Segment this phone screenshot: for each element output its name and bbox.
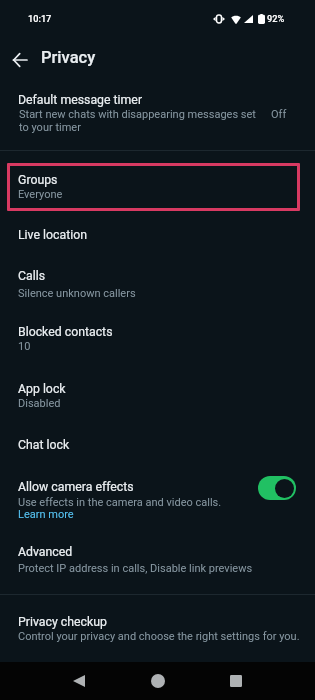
button[interactable]: Privacy checkup	[0, 605, 315, 653]
staticText: 10	[18, 340, 31, 353]
staticText: 10:17	[28, 13, 52, 24]
staticText: Allow camera effects	[18, 480, 134, 494]
staticText: Start new chats with disappearing messag…	[19, 108, 257, 133]
staticText: Groups	[18, 173, 58, 187]
button[interactable]: Allow camera effects	[258, 476, 296, 500]
staticText: Control your privacy and choose the righ…	[18, 630, 300, 643]
button[interactable]: Recent apps	[220, 665, 252, 697]
staticText: Protect IP address in calls, Disable lin…	[18, 562, 253, 575]
staticText: Off	[271, 108, 287, 121]
staticText: Silence unknown callers	[18, 287, 136, 300]
staticText: Default message timer	[18, 93, 143, 107]
staticText: Privacy	[41, 48, 96, 67]
staticText: Privacy checkup	[18, 615, 107, 629]
staticText: Calls	[18, 269, 46, 283]
button[interactable]: Chat lock	[0, 428, 315, 470]
button[interactable]: Back	[63, 665, 95, 697]
button[interactable]: Default message timer	[0, 83, 315, 151]
button[interactable]: App lock	[0, 372, 315, 428]
button[interactable]: Live location	[0, 219, 315, 259]
staticText: Disabled	[18, 397, 61, 410]
staticText: Use effects in the camera and video call…	[18, 496, 222, 509]
staticText: Learn more	[18, 508, 74, 521]
button[interactable]: Groups	[0, 159, 315, 215]
staticText: Advanced	[18, 545, 73, 559]
staticText: App lock	[18, 382, 66, 396]
staticText: Chat lock	[18, 438, 70, 452]
button[interactable]: Allow camera effects	[0, 470, 315, 525]
button[interactable]: Advanced	[0, 535, 315, 582]
button[interactable]: Blocked contacts	[0, 315, 315, 372]
button[interactable]: Back	[6, 46, 34, 74]
staticText: Everyone	[18, 188, 63, 201]
button[interactable]: Home	[142, 665, 174, 697]
staticText: Blocked contacts	[18, 325, 113, 339]
staticText: Live location	[18, 228, 88, 242]
staticText: 92%	[267, 13, 285, 24]
button[interactable]: Calls	[0, 259, 315, 315]
